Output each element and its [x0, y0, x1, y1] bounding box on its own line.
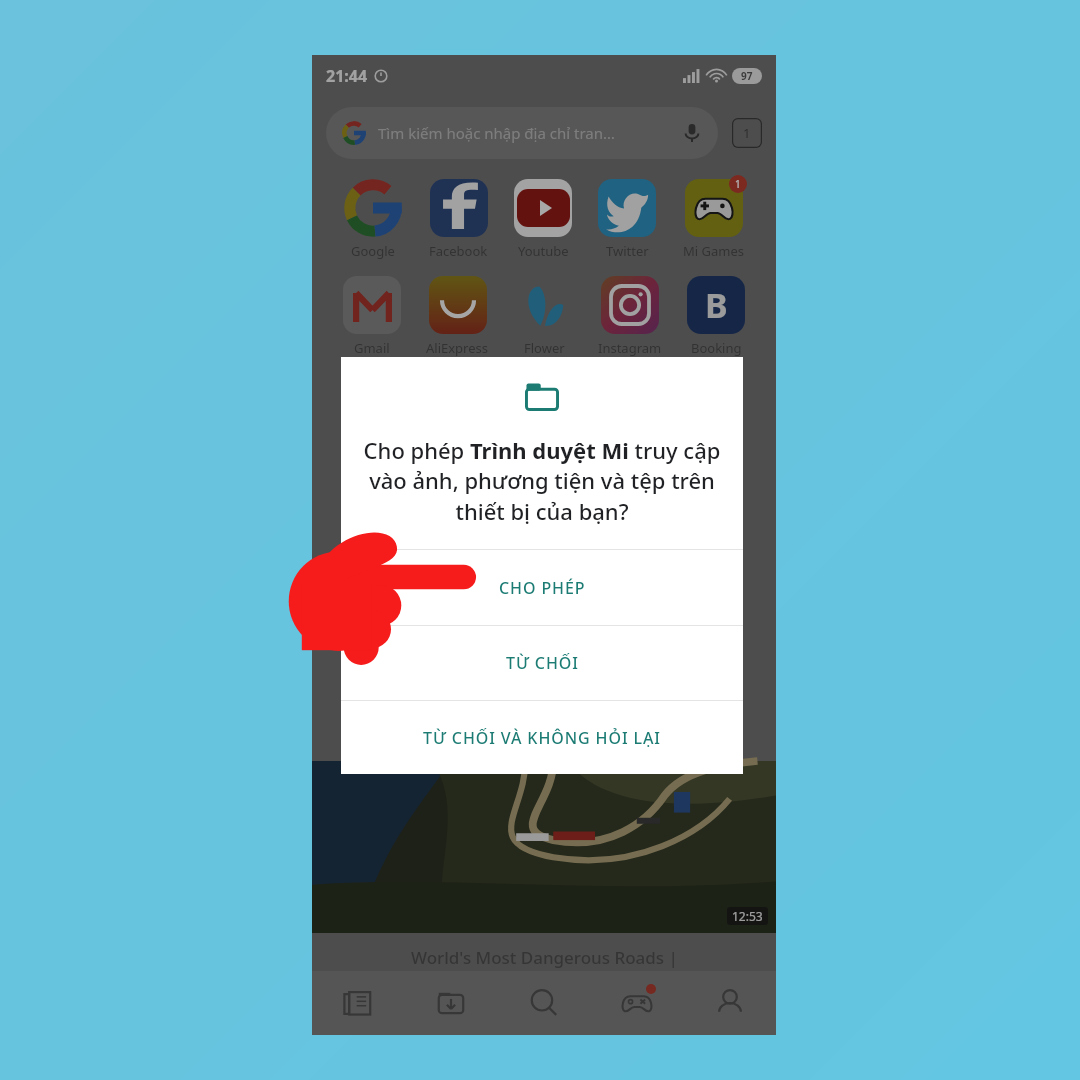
staticText: Tìm kiếm hoặc nhập địa chỉ tran…	[378, 123, 615, 143]
button[interactable]: Youtube	[510, 175, 576, 264]
staticText: 1	[743, 124, 751, 142]
button[interactable]: CHO PHÉP	[341, 550, 743, 625]
staticText: AliExpress	[426, 339, 489, 357]
staticText: Youtube	[518, 242, 569, 260]
staticText: World's Most Dangerous Roads |	[411, 946, 678, 969]
button[interactable]: Instagram	[594, 272, 666, 361]
staticText: 21:44	[326, 65, 368, 87]
button[interactable]: Games	[590, 971, 683, 1035]
button[interactable]: TỪ CHỐI	[341, 626, 743, 700]
staticText: TỪ CHỐI VÀ KHÔNG HỎI LẠI	[423, 727, 661, 749]
button[interactable]: 1	[679, 175, 748, 264]
button[interactable]: Facebook	[425, 175, 492, 264]
button[interactable]: Search	[497, 971, 590, 1035]
button[interactable]: TỪ CHỐI VÀ KHÔNG HỎI LẠI	[341, 701, 743, 774]
staticText: Twitter	[606, 242, 649, 260]
button[interactable]: Profile	[683, 971, 776, 1035]
staticText: 97	[741, 69, 753, 83]
staticText: Facebook	[429, 242, 488, 260]
staticText: Cho phép Trình duyệt Mi truy cập vào ảnh…	[363, 435, 721, 527]
staticText: Booking	[691, 339, 742, 357]
staticText: Google	[351, 242, 395, 260]
button[interactable]: Flower	[511, 272, 577, 361]
staticText: B	[705, 282, 728, 328]
staticText: 12:53	[732, 908, 763, 924]
button[interactable]: AliExpress	[422, 272, 493, 361]
button[interactable]: Downloads	[404, 971, 497, 1035]
staticText: Instagram	[598, 339, 662, 357]
button[interactable]: News	[312, 971, 404, 1035]
staticText: TỪ CHỐI	[506, 652, 579, 674]
button[interactable]: Tìm kiếm hoặc nhập địa chỉ tran…	[326, 107, 718, 159]
staticText: CHO PHÉP	[499, 577, 586, 599]
staticText: Flower	[524, 339, 565, 357]
staticText: Gmail	[354, 339, 390, 357]
button[interactable]: Google	[340, 175, 406, 264]
button[interactable]: B	[683, 272, 749, 361]
button[interactable]: Twitter	[594, 175, 660, 264]
button[interactable]: Gmail	[339, 272, 405, 361]
staticText: Mi Games	[683, 242, 744, 260]
button[interactable]: Tabs	[732, 118, 762, 148]
staticText: 1	[735, 177, 741, 191]
